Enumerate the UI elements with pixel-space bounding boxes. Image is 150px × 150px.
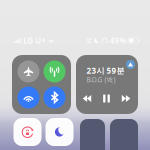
staticText: B.O.G (백) bbox=[86, 75, 115, 84]
button[interactable]: Volume bbox=[110, 119, 138, 150]
button[interactable]: Brightness bbox=[80, 119, 105, 150]
button[interactable]: Do Not Disturb bbox=[45, 118, 73, 146]
button[interactable]: Rotation Lock bbox=[13, 118, 41, 146]
button[interactable]: Pause bbox=[100, 94, 113, 103]
staticText: 23시 59분 bbox=[86, 65, 124, 76]
staticText: LG U+ bbox=[23, 35, 46, 46]
button[interactable]: Cellular Data bbox=[43, 60, 65, 82]
button[interactable]: Bluetooth bbox=[43, 86, 65, 108]
button[interactable]: Wi-Fi bbox=[17, 86, 39, 108]
button[interactable]: Previous track bbox=[80, 94, 93, 103]
button[interactable]: Next track bbox=[119, 94, 132, 103]
button[interactable]: Airplane Mode bbox=[17, 60, 39, 82]
button[interactable]: AirPlay bbox=[76, 55, 85, 64]
staticText: 49% bbox=[109, 35, 126, 46]
